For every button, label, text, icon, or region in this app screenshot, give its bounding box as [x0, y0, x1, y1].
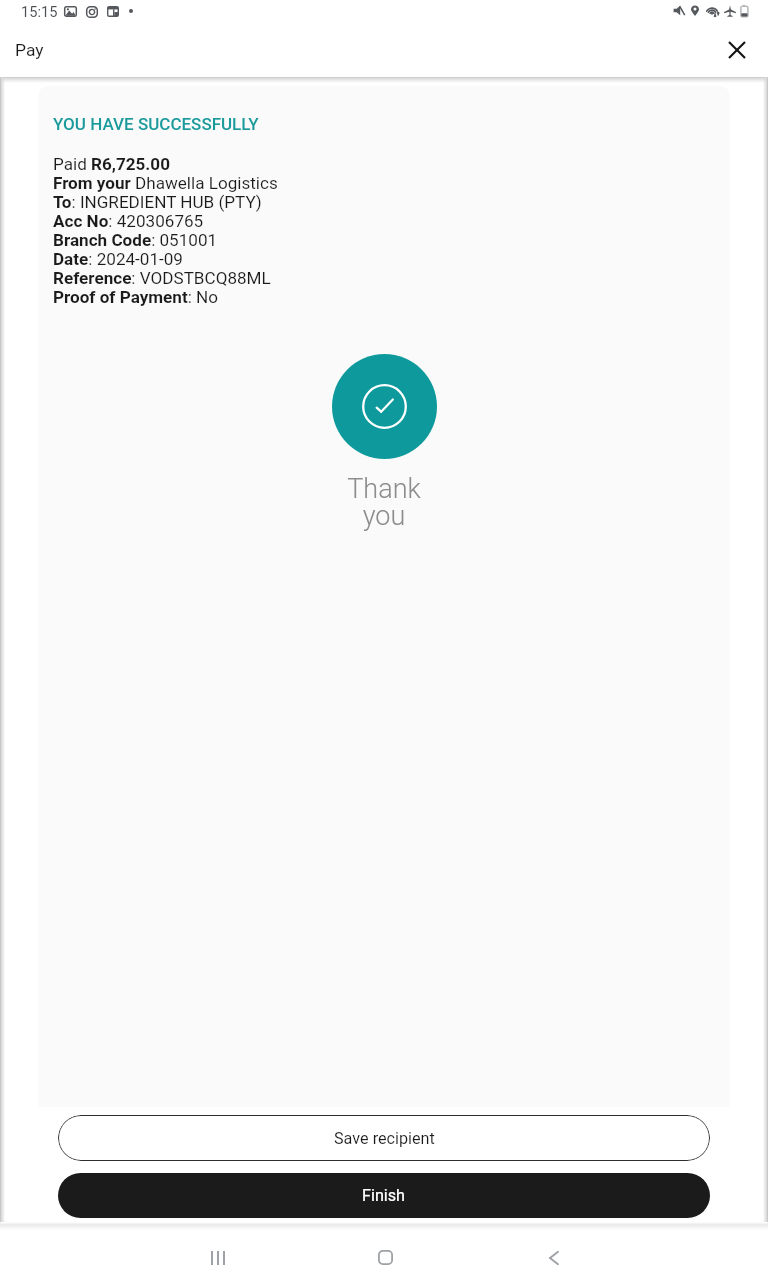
- button[interactable]: Close: [715, 28, 759, 72]
- staticText: Save recipient: [334, 1129, 435, 1148]
- staticText: YOU HAVE SUCCESSFULLY: [53, 114, 259, 134]
- button[interactable]: Back: [532, 1233, 580, 1280]
- button[interactable]: Recent apps: [193, 1233, 241, 1280]
- staticText: 15:15: [21, 3, 58, 20]
- staticText: Pay: [15, 40, 44, 60]
- staticText: Thank you: [53, 473, 715, 532]
- button[interactable]: Finish: [58, 1173, 710, 1218]
- button[interactable]: Save recipient: [58, 1115, 710, 1161]
- staticText: Paid R6,725.00 From your Dhawella Logist…: [53, 154, 278, 307]
- button[interactable]: Home: [360, 1232, 408, 1280]
- staticText: Finish: [362, 1186, 406, 1205]
